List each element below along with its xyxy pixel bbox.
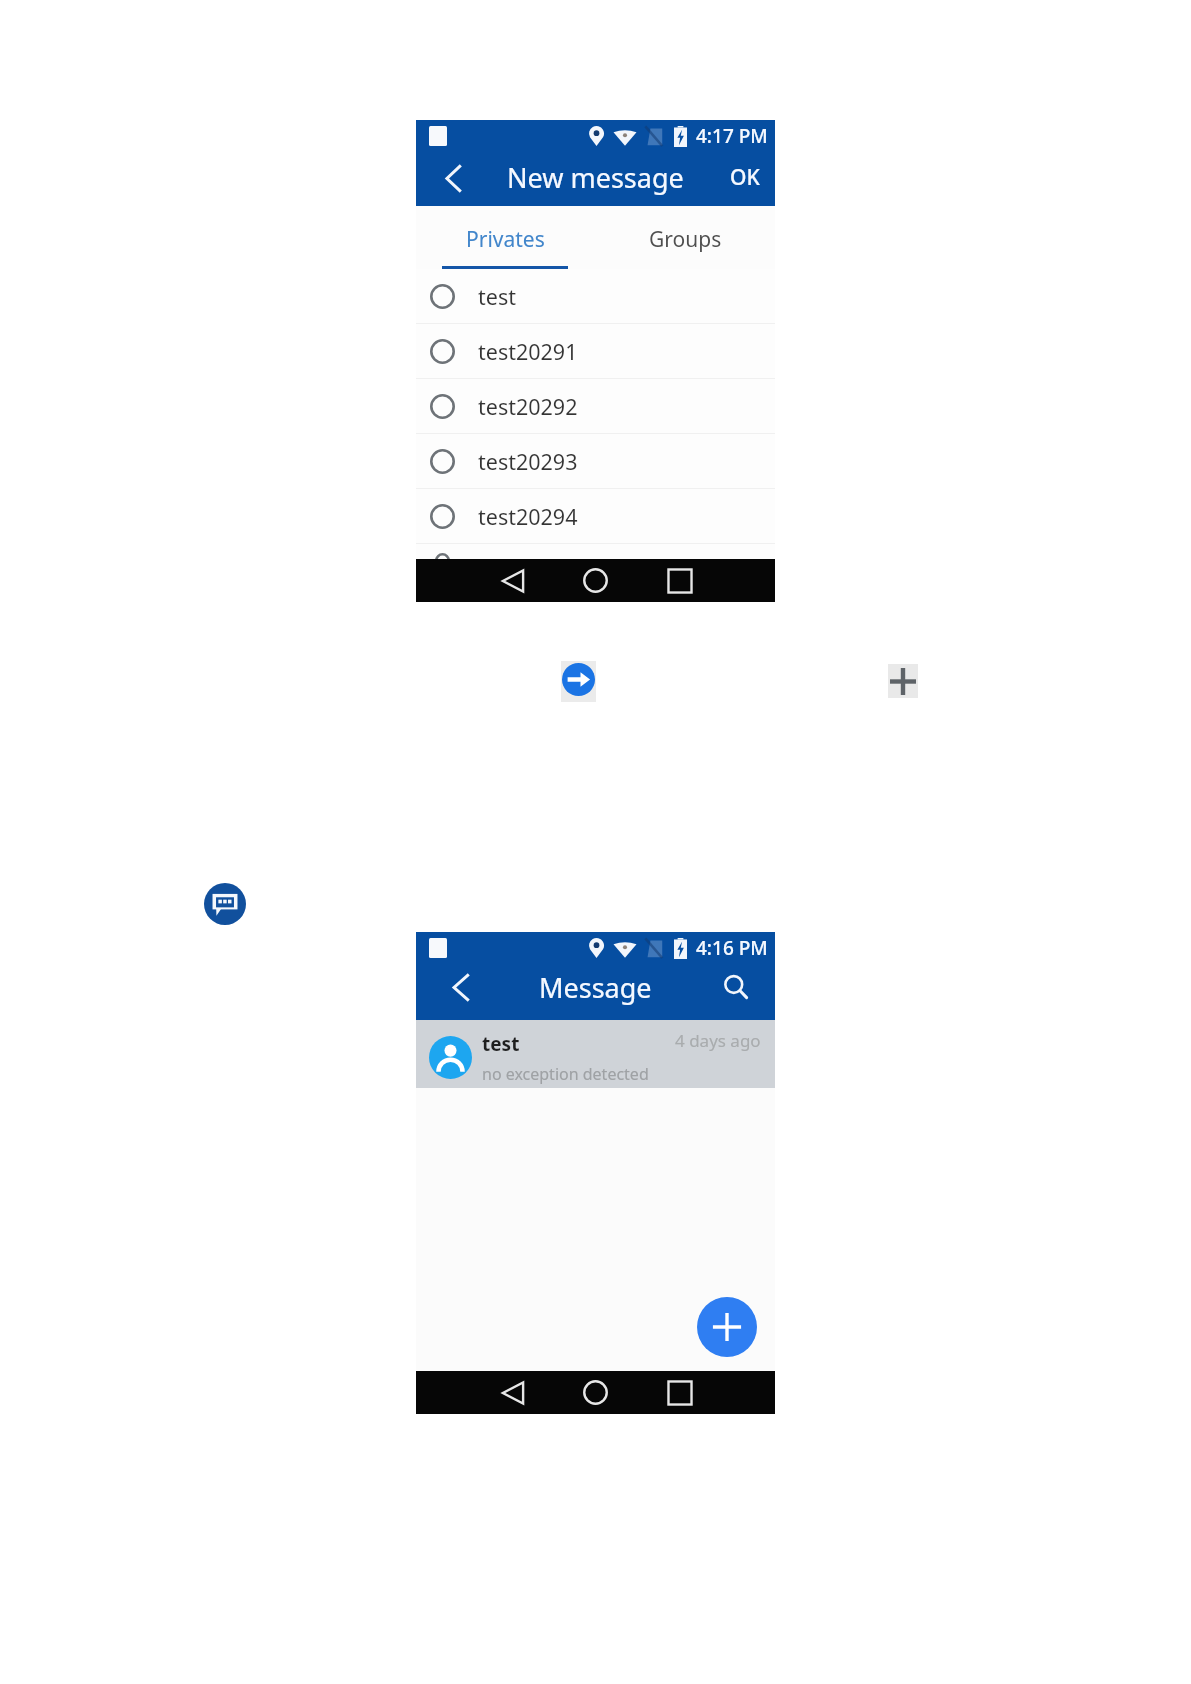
button[interactable]: test (416, 269, 775, 324)
button[interactable]: OK (715, 155, 775, 200)
button[interactable]: Privates (416, 206, 595, 269)
button[interactable]: Back (442, 969, 478, 1005)
staticText: test (482, 1031, 520, 1057)
button[interactable]: Next (561, 661, 596, 702)
staticText: 4:17 PM (696, 123, 768, 149)
button[interactable]: Back (435, 160, 471, 196)
button[interactable]: test20294 (416, 489, 775, 544)
button[interactable]: test20291 (416, 324, 775, 379)
button[interactable]: Back (486, 559, 540, 602)
button[interactable]: Home (568, 1371, 622, 1414)
staticText: Privates (466, 225, 545, 254)
staticText: test20295 (478, 553, 578, 568)
staticText: 4:16 PM (696, 935, 768, 961)
button[interactable]: test20293 (416, 434, 775, 489)
staticText: test20294 (478, 502, 578, 531)
button[interactable]: Home (568, 559, 622, 602)
button[interactable]: Add (888, 664, 918, 698)
button[interactable]: test20295 (416, 544, 775, 559)
staticText: test20292 (478, 392, 578, 421)
button[interactable]: New message (697, 1297, 757, 1357)
staticText: OK (730, 163, 760, 192)
button[interactable]: Messages (204, 883, 246, 925)
button[interactable]: Recents (653, 559, 707, 602)
staticText: test20291 (478, 337, 578, 366)
staticText: Message (539, 969, 652, 1006)
button[interactable]: test (416, 1020, 775, 1088)
staticText: Groups (649, 225, 722, 254)
button[interactable]: Search (720, 971, 752, 1003)
staticText: New message (507, 159, 684, 196)
button[interactable]: Recents (653, 1371, 707, 1414)
button[interactable]: Groups (595, 206, 775, 269)
button[interactable]: Back (486, 1371, 540, 1414)
staticText: 4 days ago (675, 1029, 761, 1052)
staticText: test20293 (478, 447, 578, 476)
staticText: test (478, 282, 516, 311)
staticText: no exception detected (482, 1063, 649, 1085)
button[interactable]: test20292 (416, 379, 775, 434)
